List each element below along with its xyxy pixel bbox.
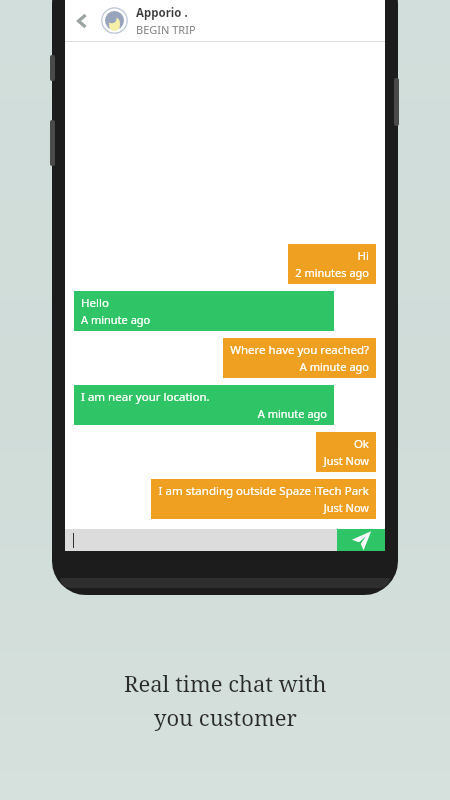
staticText: Ok (353, 436, 369, 452)
staticText: A minute ago (299, 359, 369, 374)
button[interactable]: Ok (316, 432, 376, 472)
staticText: Hello (81, 295, 327, 311)
staticText: BEGIN TRIP (136, 22, 196, 37)
staticText: I am near your location. (81, 389, 327, 405)
staticText: I am standing outside Spaze iTech Park (158, 483, 369, 499)
staticText: Just Now (323, 500, 369, 515)
staticText: Where have you reached? (230, 342, 369, 358)
button[interactable]: Back (65, 4, 99, 38)
button[interactable]: Where have you reached? (223, 338, 376, 378)
staticText: you customer (154, 702, 297, 732)
staticText: 2 minutes ago (295, 265, 369, 280)
staticText: A minute ago (257, 406, 327, 421)
staticText: Hi (357, 248, 369, 264)
button[interactable]: I am standing outside Spaze iTech Park (151, 479, 376, 519)
staticText: A minute ago (81, 312, 327, 327)
staticText: Just Now (323, 453, 369, 468)
button[interactable]: I am near your location. (74, 385, 334, 425)
button[interactable] (65, 529, 337, 551)
button[interactable]: Send (337, 529, 385, 551)
staticText: Real time chat with (124, 668, 327, 698)
staticText: Apporio . (136, 5, 188, 21)
button[interactable]: Hi (288, 244, 376, 284)
button[interactable]: Hello (74, 291, 334, 331)
